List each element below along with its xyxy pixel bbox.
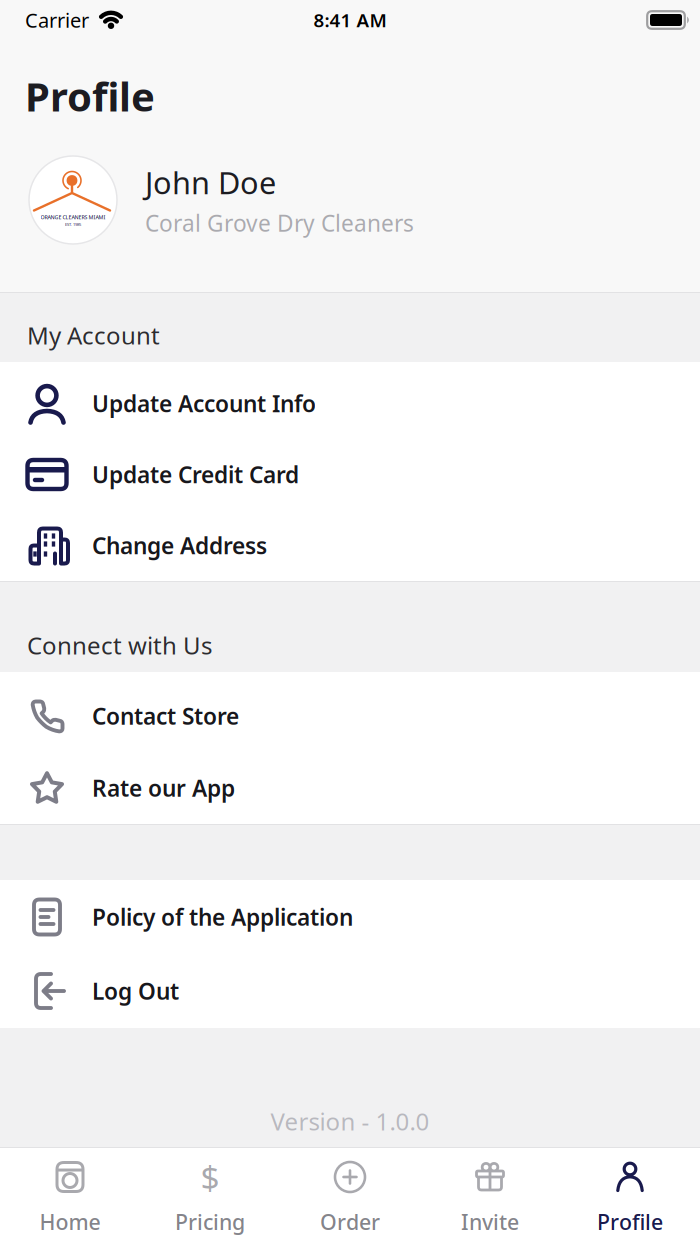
- button[interactable]: Update Account Info: [0, 368, 700, 439]
- button[interactable]: Rate our App: [0, 752, 700, 824]
- staticText: My Account: [27, 319, 160, 351]
- staticText: Change Address: [92, 530, 267, 560]
- button[interactable]: Change Address: [0, 510, 700, 581]
- button[interactable]: Contact Store: [0, 680, 700, 752]
- button[interactable]: Profile: [560, 1148, 700, 1244]
- button[interactable]: Invite: [420, 1148, 560, 1244]
- staticText: Log Out: [92, 976, 179, 1006]
- staticText: Contact Store: [92, 701, 239, 731]
- staticText: Connect with Us: [27, 629, 212, 661]
- staticText: Pricing: [175, 1208, 245, 1236]
- staticText: Rate our App: [92, 773, 235, 803]
- button[interactable]: Order: [280, 1148, 420, 1244]
- staticText: Policy of the Application: [92, 902, 353, 932]
- staticText: John Doe: [145, 162, 276, 203]
- staticText: Version - 1.0.0: [270, 1105, 429, 1137]
- staticText: Coral Grove Dry Cleaners: [145, 208, 414, 238]
- staticText: Order: [320, 1208, 380, 1236]
- button[interactable]: Policy of the Application: [0, 880, 700, 954]
- staticText: ORANGE CLEANERS MIAMI: [40, 214, 105, 221]
- button[interactable]: Log Out: [0, 954, 700, 1028]
- button[interactable]: Home: [0, 1148, 140, 1244]
- staticText: Update Account Info: [92, 388, 316, 418]
- staticText: EST. 1985: [65, 222, 81, 227]
- staticText: Profile: [597, 1208, 663, 1236]
- staticText: Invite: [461, 1208, 519, 1236]
- button[interactable]: $: [140, 1148, 280, 1244]
- button[interactable]: Update Credit Card: [0, 439, 700, 510]
- staticText: Update Credit Card: [92, 459, 299, 489]
- staticText: Profile: [25, 69, 155, 122]
- staticText: Carrier: [25, 7, 89, 33]
- staticText: 8:41 AM: [313, 8, 386, 32]
- staticText: Home: [39, 1208, 100, 1236]
- staticText: $: [200, 1155, 219, 1199]
